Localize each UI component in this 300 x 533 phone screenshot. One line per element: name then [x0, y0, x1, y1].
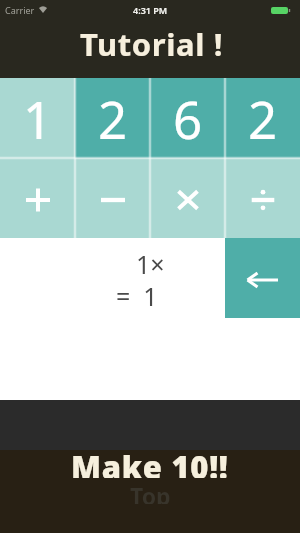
staticText: 2 — [98, 84, 128, 153]
button[interactable]: 6 — [150, 78, 225, 158]
button[interactable] — [150, 158, 225, 238]
button[interactable]: Make 10!! — [0, 446, 300, 478]
staticText: Top — [130, 480, 171, 504]
button[interactable] — [225, 238, 300, 318]
button[interactable]: 2 — [225, 78, 300, 158]
button[interactable]: 2 — [75, 78, 150, 158]
staticText: Tutorial ! — [80, 23, 224, 65]
button[interactable] — [0, 158, 75, 238]
button[interactable] — [225, 158, 300, 238]
staticText: 4:31 PM — [133, 4, 168, 16]
staticText: 1× — [136, 247, 165, 281]
staticText: = 1 — [116, 279, 158, 313]
staticText: 2 — [248, 84, 278, 153]
button[interactable] — [75, 158, 150, 238]
staticText: Carrier — [5, 4, 35, 16]
button[interactable]: Top — [0, 480, 300, 504]
staticText: Make 10!! — [71, 446, 229, 478]
staticText: 1 — [23, 84, 53, 153]
button[interactable]: 1 — [0, 78, 75, 158]
staticText: 6 — [173, 84, 203, 153]
